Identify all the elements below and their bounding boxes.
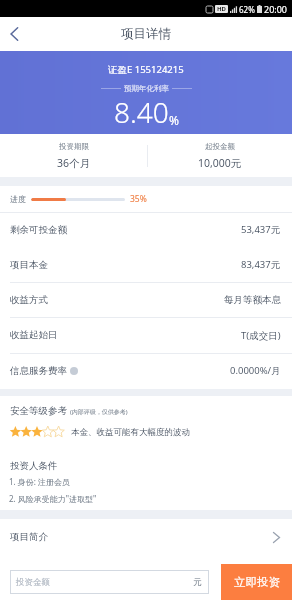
staticText: 投资人条件 <box>10 460 58 472</box>
staticText: 起投金额 <box>205 142 235 151</box>
button[interactable]: 收益起始日 <box>0 318 292 354</box>
button[interactable]: Back <box>0 17 28 51</box>
staticText: 83,437元 <box>241 258 281 271</box>
staticText: 进度 <box>10 194 26 204</box>
button[interactable]: 项目本金 <box>0 248 292 283</box>
staticText: 10,000元 <box>198 156 242 170</box>
staticText: 立即投资 <box>234 575 280 589</box>
staticText: 36个月 <box>57 156 91 170</box>
button[interactable]: 投资金额 <box>10 570 209 594</box>
staticText: 0.0000%/月 <box>230 364 281 377</box>
staticText: 62% <box>239 4 255 15</box>
staticText: 项目本金 <box>10 259 48 271</box>
staticText: 8.40 <box>114 93 169 131</box>
staticText: (内部评级，仅供参考) <box>70 408 128 416</box>
staticText: 20:00 <box>264 3 288 15</box>
staticText: 预期年化利率 <box>124 84 169 93</box>
staticText: 收益起始日 <box>10 329 58 341</box>
button[interactable]: 立即投资 <box>221 564 292 600</box>
staticText: 投资期限 <box>59 142 89 151</box>
staticText: 项目简介 <box>10 531 48 543</box>
staticText: 2. 风险承受能力"进取型" <box>9 493 97 504</box>
staticText: HD <box>217 5 226 13</box>
staticText: 本金、收益可能有大幅度的波动 <box>71 427 190 438</box>
button[interactable]: 信息服务费率 <box>0 354 292 389</box>
staticText: 安全等级参考 <box>10 405 67 417</box>
staticText: 证盈E 155124215 <box>108 63 184 76</box>
button[interactable]: 收益方式 <box>0 283 292 318</box>
staticText: 剩余可投金额 <box>10 224 67 236</box>
staticText: 收益方式 <box>10 294 48 306</box>
staticText: 每月等额本息 <box>224 294 281 306</box>
staticText: T(成交日) <box>241 329 281 342</box>
staticText: 53,437元 <box>241 223 281 236</box>
staticText: 项目详情 <box>121 26 171 42</box>
staticText: % <box>169 112 179 128</box>
staticText: 35% <box>130 193 147 205</box>
staticText: 1. 身份: 注册会员 <box>9 476 71 487</box>
staticText: 投资金额 <box>16 577 50 588</box>
button[interactable]: 项目简介 <box>0 519 292 555</box>
button[interactable]: 剩余可投金额 <box>0 213 292 248</box>
staticText: 元 <box>193 577 202 588</box>
staticText: 信息服务费率 <box>10 365 67 377</box>
